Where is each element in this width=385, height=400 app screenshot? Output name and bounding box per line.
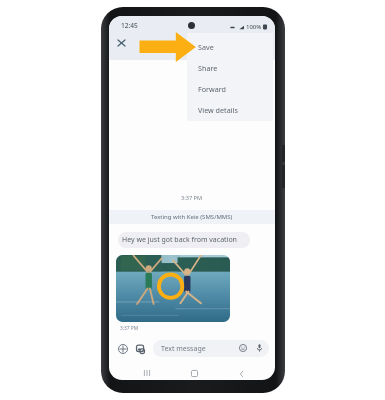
button[interactable]: Save [187, 36, 273, 57]
button[interactable]: Hey we just got back from vacation [118, 232, 250, 248]
staticText: Forward [198, 84, 226, 94]
staticText: 100% [246, 23, 262, 31]
staticText: 3:37 PM [120, 325, 139, 332]
staticText: Share [198, 63, 218, 73]
staticText: Hey we just got back from vacation [122, 235, 237, 245]
staticText: Texting with Keie (SMS/MMS) [151, 213, 233, 221]
button[interactable]: Close [111, 33, 131, 53]
button[interactable]: Add attachment [114, 340, 132, 358]
staticText: Text message [161, 344, 206, 354]
button[interactable]: Share [187, 57, 273, 78]
button[interactable]: Emoji [234, 339, 252, 357]
button[interactable]: Text message [153, 340, 269, 357]
button[interactable]: Recents [138, 364, 156, 380]
button[interactable]: Gallery [131, 340, 149, 358]
button[interactable]: Photo from Keie [116, 255, 230, 322]
button[interactable]: Forward [187, 78, 273, 99]
staticText: 12:45 [121, 21, 138, 30]
button[interactable]: Back [232, 365, 250, 380]
staticText: View details [198, 105, 238, 115]
button[interactable]: Home [185, 364, 203, 380]
staticText: Save [198, 42, 214, 52]
button[interactable]: Voice input [250, 339, 268, 357]
staticText: 3:37 PM [181, 194, 203, 202]
button[interactable]: View details [187, 99, 273, 120]
